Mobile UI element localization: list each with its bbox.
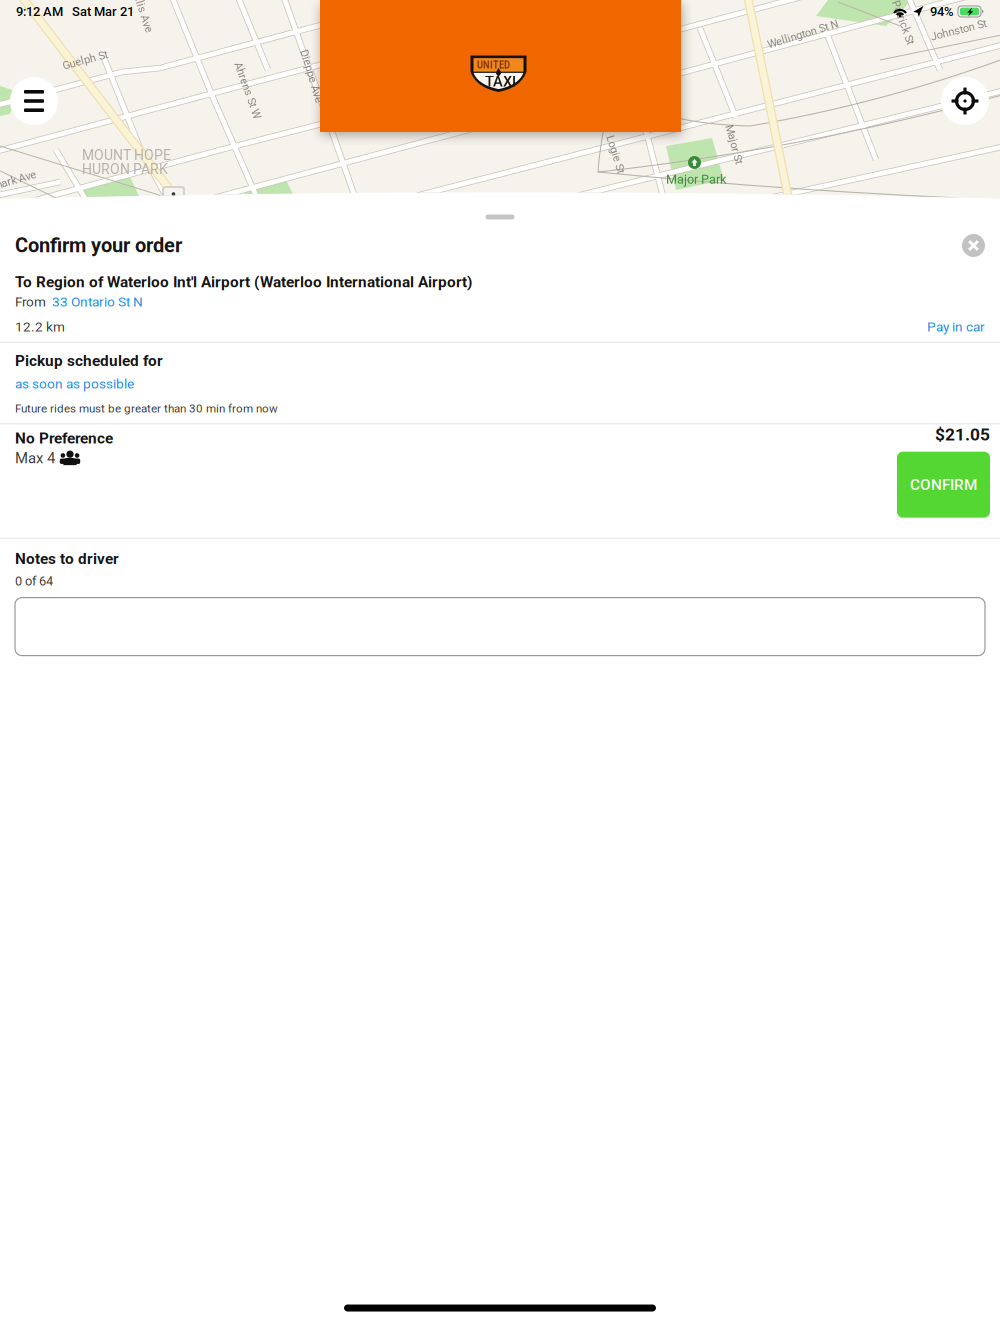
button[interactable]: CONFIRM [897,452,990,518]
staticText: 12.2 km [15,319,65,335]
staticText: No Preference [15,429,113,447]
staticText: 33 Ontario St N [46,294,143,310]
staticText: Notes to driver [15,550,119,568]
staticText: Future rides must be greater than 30 min… [15,402,278,415]
staticText: 94% [930,4,954,19]
staticText: TAXI [485,73,516,90]
staticText: Wellington St N [766,28,840,40]
staticText: Sat Mar 21 [63,4,134,19]
staticText: 9:12 AM [16,4,63,19]
staticText: Guelph St [62,54,108,66]
staticText: mark Ave [0,174,37,186]
button[interactable]: as soon as possible [15,376,134,392]
staticText: MOUNT HOPE [82,147,171,163]
staticText: Major Park [666,172,726,187]
staticText: 0 of 64 [15,574,53,589]
button[interactable]: Close [962,234,985,257]
button[interactable]: Notes to driver text field [15,598,985,656]
staticText: From [15,294,46,310]
staticText: Pickup scheduled for [15,352,163,370]
staticText: Ahrens St W [218,84,277,96]
button[interactable]: Pay in car [927,319,985,335]
staticText: Johnston St [930,24,987,36]
staticText: $21.05 [935,424,990,445]
button[interactable]: Center on my location [941,77,989,125]
staticText: Patrick St [880,16,926,28]
staticText: Logie St [596,148,635,160]
staticText: CONFIRM [910,476,977,494]
staticText: Dieppe Ave [284,70,339,82]
staticText: Pay in car [927,319,985,335]
button[interactable]: Menu [10,77,58,125]
staticText: HURON PARK [82,161,168,177]
staticText: Max 4 [15,449,55,467]
staticText: UNITED [477,58,510,71]
staticText: To Region of Waterloo Int'l Airport (Wat… [15,273,472,291]
button[interactable]: 33 Ontario St N [46,294,143,310]
staticText: Major St [714,138,754,150]
staticText: as soon as possible [15,376,134,392]
staticText: Ellis Ave [122,6,164,18]
staticText: Confirm your order [15,234,182,257]
